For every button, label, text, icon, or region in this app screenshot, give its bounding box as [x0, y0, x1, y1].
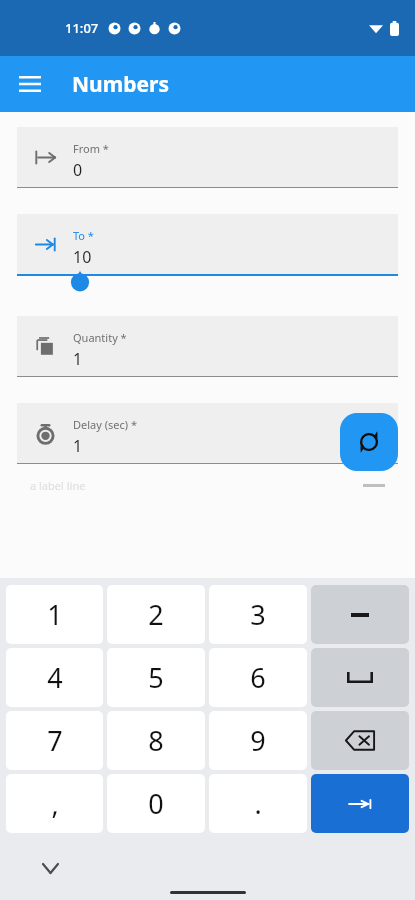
button[interactable]: 9 [209, 711, 307, 770]
button[interactable]: Regenerate [340, 413, 398, 471]
button[interactable]: Minus [311, 585, 409, 644]
button[interactable]: Hide keyboard [34, 852, 66, 884]
button[interactable]: 3 [209, 585, 307, 644]
staticText: 1 [73, 348, 83, 370]
staticText: 1 [47, 596, 63, 633]
staticText: 4 [47, 659, 63, 696]
staticText: 3 [250, 596, 266, 633]
staticText: 5 [148, 659, 164, 696]
button[interactable]: 4 [6, 648, 103, 707]
button[interactable]: Open navigation menu [8, 62, 52, 106]
staticText: From * [73, 141, 109, 156]
button[interactable]: . [209, 774, 307, 833]
staticText: 6 [250, 659, 266, 696]
staticText: 8 [148, 722, 164, 759]
button[interactable]: 0 [107, 774, 205, 833]
staticText: 9 [250, 722, 266, 759]
staticText: Quantity * [73, 330, 127, 345]
staticText: 2 [148, 596, 164, 633]
staticText: Delay (sec) * [73, 417, 137, 432]
staticText: Numbers [72, 70, 169, 99]
button[interactable]: Next field [311, 774, 409, 833]
button[interactable]: Space [311, 648, 409, 707]
button[interactable]: Delete [311, 711, 409, 770]
staticText: a label line [30, 478, 86, 493]
staticText: . [254, 785, 262, 822]
button[interactable]: 2 [107, 585, 205, 644]
button[interactable]: 8 [107, 711, 205, 770]
staticText: , [51, 785, 59, 822]
button[interactable]: 5 [107, 648, 205, 707]
button[interactable]: 1 [6, 585, 103, 644]
button[interactable]: , [6, 774, 103, 833]
button[interactable]: 7 [6, 711, 103, 770]
staticText: 10 [73, 246, 92, 268]
staticText: 0 [73, 159, 83, 181]
staticText: To * [73, 228, 94, 243]
staticText: 7 [47, 722, 63, 759]
staticText: 0 [148, 785, 164, 822]
staticText: 11:07 [65, 19, 99, 37]
staticText: 1 [73, 435, 83, 457]
button[interactable]: 6 [209, 648, 307, 707]
